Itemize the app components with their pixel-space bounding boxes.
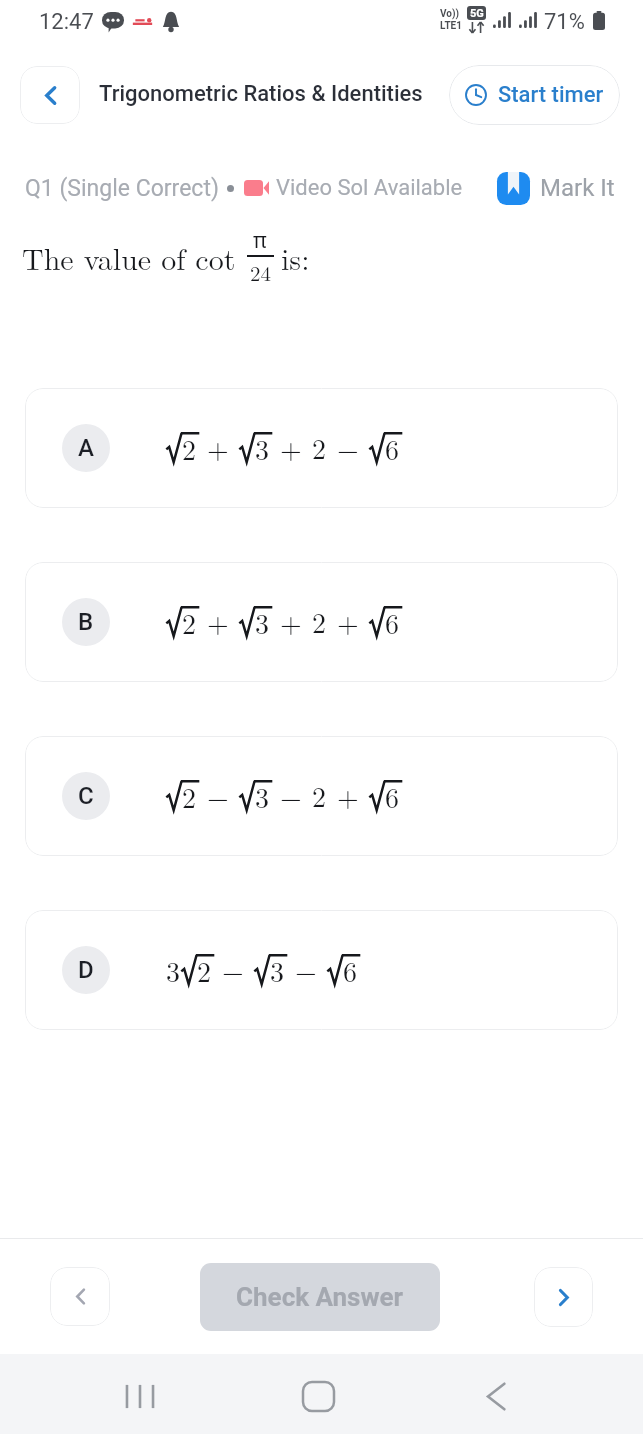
staticText: is: bbox=[281, 236, 310, 279]
staticText: 2 bbox=[182, 776, 197, 816]
staticText: 2 bbox=[182, 602, 197, 642]
staticText: 2 bbox=[312, 427, 327, 467]
staticText: 3 bbox=[166, 950, 181, 990]
staticText: 3 bbox=[255, 602, 270, 642]
staticText: − bbox=[295, 949, 317, 989]
staticText: 71% bbox=[544, 9, 585, 35]
staticText: 5G bbox=[470, 7, 484, 20]
staticText: B bbox=[78, 608, 94, 636]
button[interactable]: Start timer bbox=[449, 65, 620, 125]
staticText: 2 bbox=[197, 950, 212, 990]
staticText: + bbox=[207, 601, 229, 641]
staticText: + bbox=[207, 427, 229, 467]
staticText: 6 bbox=[385, 428, 400, 468]
staticText: 3 bbox=[255, 776, 270, 816]
staticText: 2 bbox=[312, 775, 327, 815]
staticText: − bbox=[337, 427, 359, 467]
staticText: 6 bbox=[343, 950, 358, 990]
staticText: Q1 (Single Correct) bbox=[25, 175, 219, 202]
button[interactable]: Recent apps bbox=[112, 1368, 168, 1424]
button[interactable]: B bbox=[25, 562, 618, 682]
staticText: − bbox=[222, 949, 244, 989]
staticText: 3 bbox=[255, 428, 270, 468]
staticText: A bbox=[78, 434, 94, 462]
button[interactable]: Back bbox=[468, 1368, 524, 1424]
staticText: Video Sol Available bbox=[276, 175, 463, 201]
staticText: − bbox=[207, 775, 229, 815]
staticText: + bbox=[337, 601, 359, 641]
button[interactable]: Check Answer bbox=[200, 1263, 440, 1331]
staticText: − bbox=[280, 775, 302, 815]
button[interactable]: Mark It bbox=[497, 162, 615, 214]
staticText: + bbox=[337, 775, 359, 815]
staticText: 12:47 bbox=[39, 9, 94, 35]
staticText: 6 bbox=[385, 776, 400, 816]
staticText: Check Answer bbox=[236, 1282, 404, 1312]
staticText: Start timer bbox=[498, 82, 604, 108]
staticText: The value of cot bbox=[22, 236, 236, 279]
staticText: + bbox=[280, 427, 302, 467]
staticText: C bbox=[78, 782, 94, 810]
staticText: 3 bbox=[270, 950, 285, 990]
button[interactable]: Previous question bbox=[50, 1267, 110, 1326]
button[interactable]: A bbox=[25, 388, 618, 508]
staticText: Mark It bbox=[540, 174, 615, 202]
button[interactable]: Next question bbox=[534, 1267, 593, 1327]
staticText: D bbox=[78, 956, 94, 984]
button[interactable]: Home bbox=[290, 1368, 346, 1424]
staticText: 6 bbox=[385, 602, 400, 642]
staticText: 2 bbox=[312, 601, 327, 641]
staticText: π bbox=[253, 226, 267, 255]
button[interactable]: C bbox=[25, 736, 618, 856]
staticText: 2 bbox=[182, 428, 197, 468]
staticText: Trigonometric Ratios & Identities bbox=[99, 81, 423, 107]
staticText: 24 bbox=[250, 257, 271, 287]
staticText: LTE1 bbox=[440, 20, 462, 32]
button[interactable]: Back bbox=[20, 66, 80, 124]
button[interactable]: D bbox=[25, 910, 618, 1030]
staticText: + bbox=[280, 601, 302, 641]
staticText: Vo)) bbox=[440, 8, 460, 20]
